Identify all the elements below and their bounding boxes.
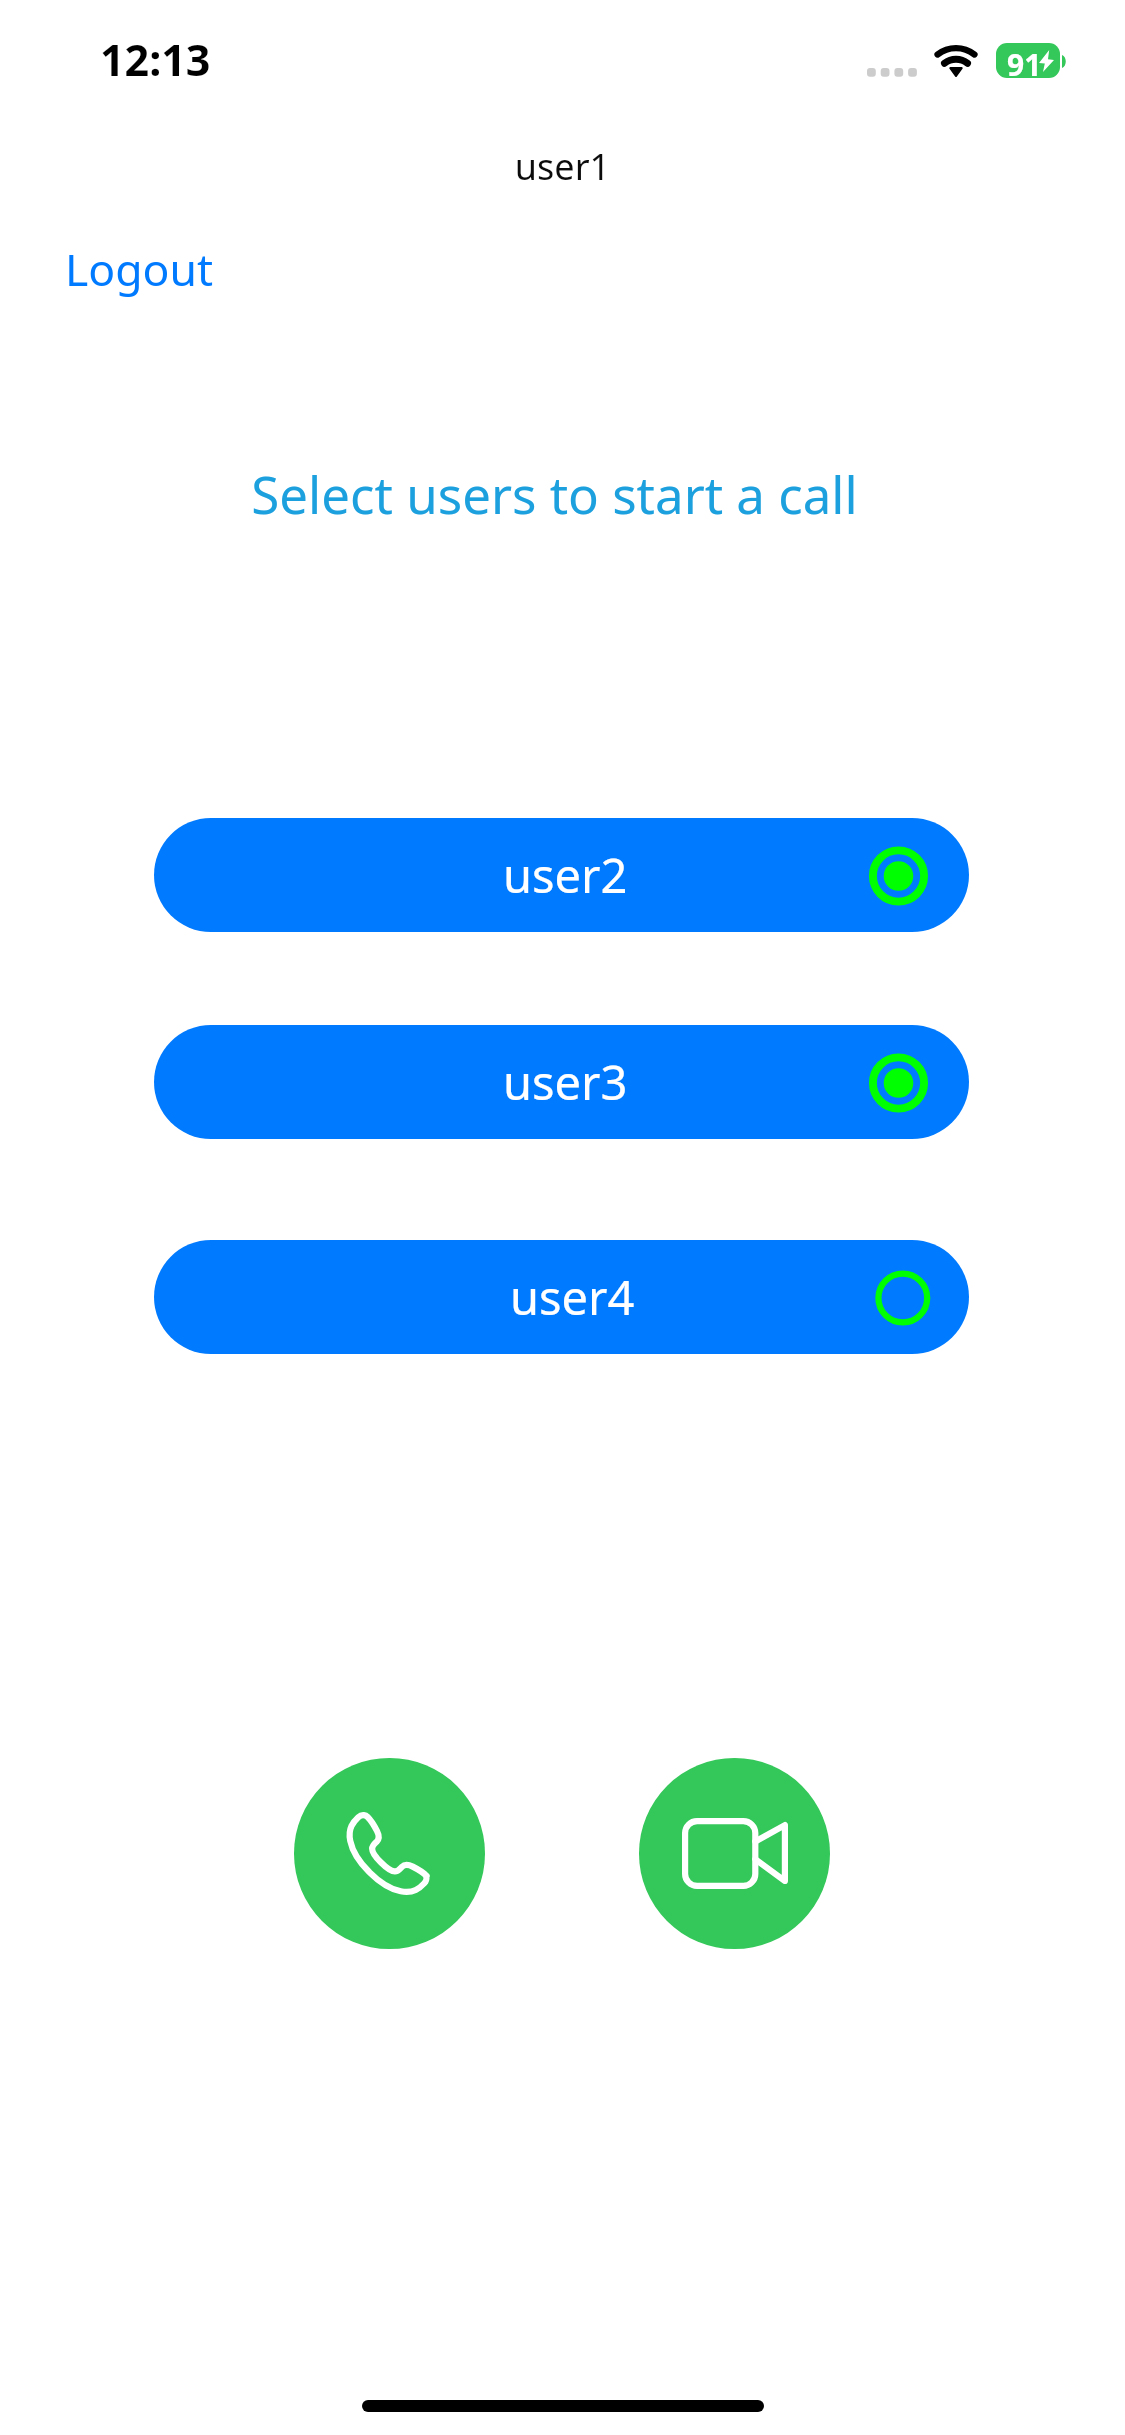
button[interactable]: Start video call bbox=[639, 1758, 830, 1949]
button[interactable]: user2 bbox=[154, 818, 969, 932]
button[interactable]: user3 bbox=[154, 1025, 969, 1139]
button[interactable]: Start audio call bbox=[294, 1758, 485, 1949]
button[interactable]: Logout bbox=[57, 230, 222, 307]
staticText: user3 bbox=[503, 1050, 628, 1114]
staticText: 12:13 bbox=[100, 30, 211, 89]
button[interactable]: user4 bbox=[154, 1240, 969, 1354]
staticText: user4 bbox=[510, 1265, 635, 1329]
staticText: Select users to start a call bbox=[0, 459, 1117, 528]
staticText: user1 bbox=[0, 142, 1125, 191]
staticText: Logout bbox=[65, 238, 214, 299]
staticText: 91 bbox=[1007, 44, 1042, 79]
staticText: user2 bbox=[503, 843, 628, 907]
